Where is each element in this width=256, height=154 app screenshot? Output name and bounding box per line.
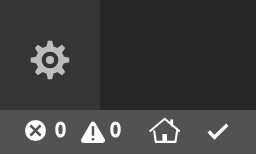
button[interactable]: Home (149, 118, 181, 146)
button[interactable]: Done (207, 123, 229, 139)
button[interactable] (25, 118, 69, 144)
other: Warnings (79, 119, 107, 143)
other: Errors (25, 120, 46, 141)
button[interactable]: Settings (0, 0, 100, 110)
